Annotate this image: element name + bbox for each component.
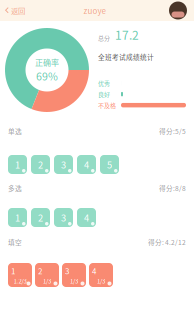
button[interactable]: 2: [31, 155, 50, 174]
button[interactable]: 返回: [0, 0, 31, 22]
staticText: 返回: [11, 5, 25, 16]
staticText: 1/3: [43, 277, 51, 285]
staticText: 不及格: [98, 101, 116, 109]
staticText: 总分: [98, 33, 110, 42]
staticText: 1: [11, 265, 15, 277]
staticText: 17.2: [115, 26, 139, 43]
staticText: 1.2/3: [13, 277, 26, 285]
button[interactable]: 1: [8, 155, 27, 174]
staticText: 得分:5/5: [159, 126, 186, 136]
button[interactable]: 3: [54, 155, 73, 174]
staticText: 正确率: [35, 56, 59, 68]
staticText: 1: [15, 211, 20, 224]
staticText: 1/3: [97, 277, 105, 285]
button[interactable]: 1: [8, 208, 27, 227]
staticText: 全班考试成绩统计: [98, 52, 154, 62]
staticText: 2: [38, 211, 43, 224]
staticText: 多选: [8, 183, 22, 193]
staticText: 69%: [36, 68, 58, 83]
staticText: 3: [61, 211, 66, 224]
staticText: 填空: [8, 237, 22, 247]
button[interactable]: 4: [77, 155, 96, 174]
staticText: 1: [15, 158, 20, 171]
staticText: 2: [38, 158, 43, 171]
button[interactable]: 2: [35, 263, 59, 287]
button[interactable]: 1: [8, 263, 32, 287]
staticText: 5: [107, 158, 112, 171]
button[interactable]: 4: [77, 208, 96, 227]
staticText: 得分:8/8: [159, 183, 186, 193]
button[interactable]: 4: [89, 263, 113, 287]
button[interactable]: Profile: [169, 1, 194, 19]
staticText: 4: [84, 211, 89, 224]
staticText: 3: [65, 265, 69, 277]
button[interactable]: 5: [100, 155, 119, 174]
button[interactable]: 2: [31, 208, 50, 227]
button[interactable]: 3: [54, 208, 73, 227]
staticText: 2: [38, 265, 42, 277]
staticText: 4: [84, 158, 89, 171]
staticText: 1/3: [70, 277, 78, 285]
staticText: 4: [92, 265, 96, 277]
staticText: 单选: [8, 126, 22, 136]
staticText: 得分: 4.2/12: [148, 237, 186, 247]
staticText: 良好: [98, 90, 110, 98]
staticText: 优秀: [98, 79, 110, 87]
staticText: zuoye: [83, 5, 105, 16]
staticText: 3: [61, 158, 66, 171]
button[interactable]: 3: [62, 263, 86, 287]
